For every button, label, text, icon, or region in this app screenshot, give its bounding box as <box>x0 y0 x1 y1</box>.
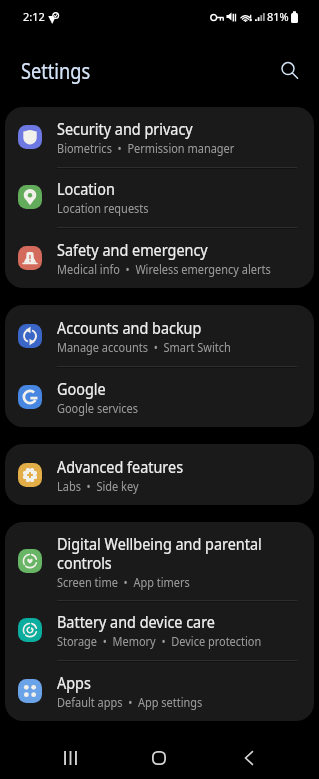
staticText: Medical info • Wireless emergency alerts <box>57 261 271 277</box>
button[interactable]: Battery and device care <box>5 600 314 660</box>
button[interactable]: Safety and emergency <box>5 227 314 288</box>
staticText: Manage accounts • Smart Switch <box>57 339 231 355</box>
button[interactable]: Home <box>136 735 182 779</box>
staticText: Biometrics • Permission manager <box>57 140 235 156</box>
button[interactable]: Advanced features <box>5 444 314 505</box>
staticText: Battery and device care <box>57 611 215 632</box>
button[interactable]: Search <box>277 58 303 84</box>
staticText: Security and privacy <box>57 118 193 139</box>
staticText: Default apps • App settings <box>57 694 203 710</box>
button[interactable]: Accounts and backup <box>5 305 314 366</box>
button[interactable]: Digital Wellbeing and parental controls <box>5 522 314 600</box>
button[interactable]: Google <box>5 366 314 427</box>
staticText: Accounts and backup <box>57 317 202 338</box>
button[interactable]: Back <box>226 735 272 779</box>
staticText: 81% <box>267 9 289 24</box>
staticText: Settings <box>21 56 90 85</box>
staticText: Safety and emergency <box>57 239 209 260</box>
button[interactable]: Recent apps <box>47 735 93 779</box>
staticText: Storage • Memory • Device protection <box>57 633 262 649</box>
staticText: Screen time • App timers <box>57 574 190 590</box>
staticText: Google services <box>57 400 139 416</box>
staticText: Apps <box>57 672 91 693</box>
staticText: Location <box>57 178 116 199</box>
button[interactable]: Apps <box>5 660 314 721</box>
staticText: Google <box>57 378 106 399</box>
staticText: 2:12 <box>23 9 45 24</box>
staticText: Location requests <box>57 200 149 216</box>
staticText: Digital Wellbeing and parental controls <box>57 533 281 573</box>
button[interactable]: Location <box>5 167 314 227</box>
staticText: Advanced features <box>57 456 183 477</box>
button[interactable]: Security and privacy <box>5 107 314 167</box>
staticText: Labs • Side key <box>57 478 139 494</box>
